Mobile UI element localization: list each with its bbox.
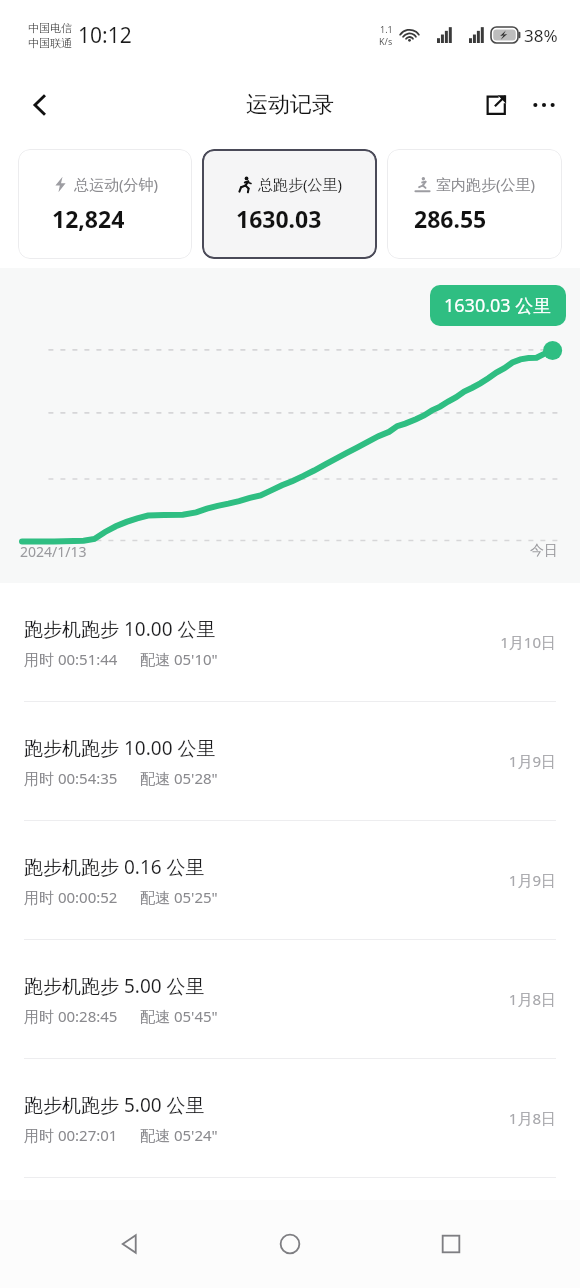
staticText: 1月8日: [508, 1108, 556, 1128]
staticText: 1月10日: [500, 632, 556, 652]
staticText: 中国电信: [28, 21, 72, 35]
button[interactable]: Back: [14, 79, 66, 131]
button[interactable]: More options: [520, 81, 568, 129]
staticText: 总运动(分钟): [74, 174, 159, 194]
staticText: 总跑步(公里): [258, 174, 343, 194]
staticText: 1630.03 公里: [444, 293, 552, 318]
button[interactable]: 跑步机跑步 0.16 公里: [0, 821, 580, 939]
staticText: 38%: [524, 24, 558, 47]
staticText: 2024/1/13: [20, 542, 87, 561]
staticText: 中国联通: [28, 36, 72, 50]
button[interactable]: Recent apps: [420, 1213, 482, 1275]
staticText: 1月9日: [508, 751, 556, 771]
staticText: 配速 05'25": [140, 887, 218, 907]
staticText: 1月9日: [508, 870, 556, 890]
button[interactable]: 跑步机跑步 10.00 公里: [0, 702, 580, 820]
staticText: 跑步机跑步 5.00 公里: [24, 973, 205, 999]
staticText: 286.55: [414, 203, 487, 234]
staticText: 配速 05'45": [140, 1006, 218, 1026]
staticText: K/s: [379, 35, 393, 47]
staticText: 运动记录: [246, 91, 334, 119]
staticText: 跑步机跑步 10.00 公里: [24, 735, 216, 761]
staticText: 用时 00:00:52: [24, 887, 118, 907]
button[interactable]: 跑步机跑步 10.00 公里: [0, 583, 580, 701]
staticText: 12,824: [52, 203, 125, 234]
button[interactable]: Share: [472, 81, 520, 129]
staticText: 跑步机跑步 0.16 公里: [24, 854, 205, 880]
button[interactable]: 跑步机跑步 5.00 公里: [0, 1059, 580, 1177]
staticText: 1630.03: [236, 203, 322, 234]
staticText: 用时 00:27:01: [24, 1125, 118, 1145]
button[interactable]: 总跑步(公里): [202, 149, 377, 259]
staticText: 跑步机跑步 10.00 公里: [24, 616, 216, 642]
staticText: 配速 05'28": [140, 768, 218, 788]
staticText: 配速 05'10": [140, 649, 218, 669]
button[interactable]: Back: [99, 1213, 161, 1275]
button[interactable]: 总运动(分钟): [18, 149, 192, 259]
staticText: 10:12: [78, 21, 132, 50]
staticText: 1月8日: [508, 989, 556, 1009]
staticText: 跑步机跑步 5.00 公里: [24, 1092, 205, 1118]
button[interactable]: 室内跑步(公里): [387, 149, 562, 259]
staticText: 配速 05'24": [140, 1125, 218, 1145]
staticText: 1.1: [380, 23, 393, 35]
button[interactable]: 跑步机跑步 5.00 公里: [0, 940, 580, 1058]
staticText: 用时 00:51:44: [24, 649, 118, 669]
button[interactable]: Home: [259, 1213, 321, 1275]
staticText: 用时 00:28:45: [24, 1006, 118, 1026]
staticText: 室内跑步(公里): [436, 174, 536, 194]
staticText: 今日: [530, 542, 558, 560]
staticText: 用时 00:54:35: [24, 768, 118, 788]
